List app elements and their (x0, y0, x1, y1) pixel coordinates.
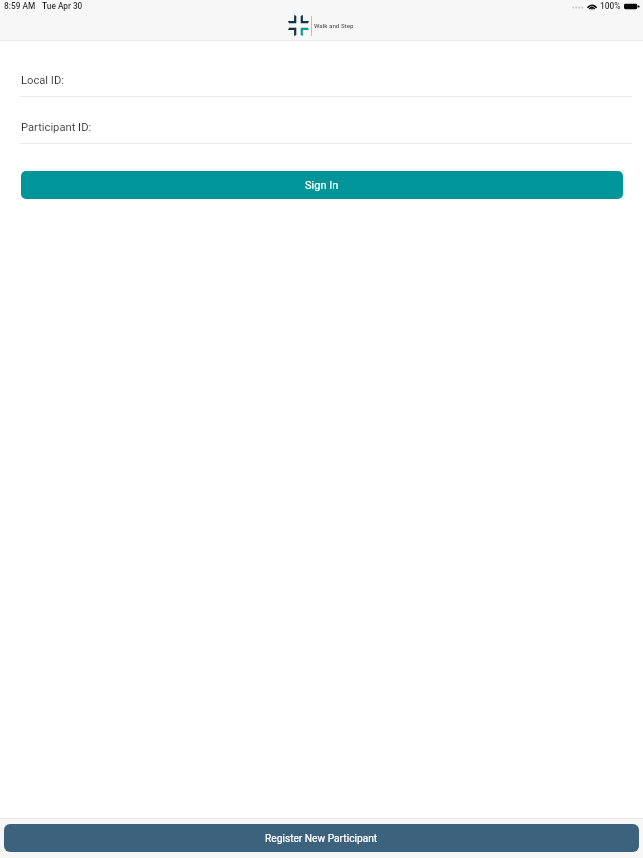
staticText: Local ID: (21, 74, 64, 87)
staticText: 8:59 AM (4, 1, 36, 11)
staticText: 100% (600, 1, 621, 11)
button[interactable]: Participant ID: (0, 121, 643, 144)
button[interactable]: Register New Participant (4, 824, 639, 852)
button[interactable]: Sign In (21, 171, 623, 199)
button[interactable]: Walk and Step logo (288, 15, 354, 36)
staticText: Register New Participant (265, 833, 378, 845)
staticText: Sign In (305, 179, 339, 192)
staticText: Walk and Step (314, 22, 354, 29)
button[interactable]: Local ID: (0, 74, 643, 97)
staticText: Participant ID: (21, 121, 92, 134)
other: Walk and Step logo (288, 15, 309, 36)
staticText: Tue Apr 30 (42, 1, 83, 11)
